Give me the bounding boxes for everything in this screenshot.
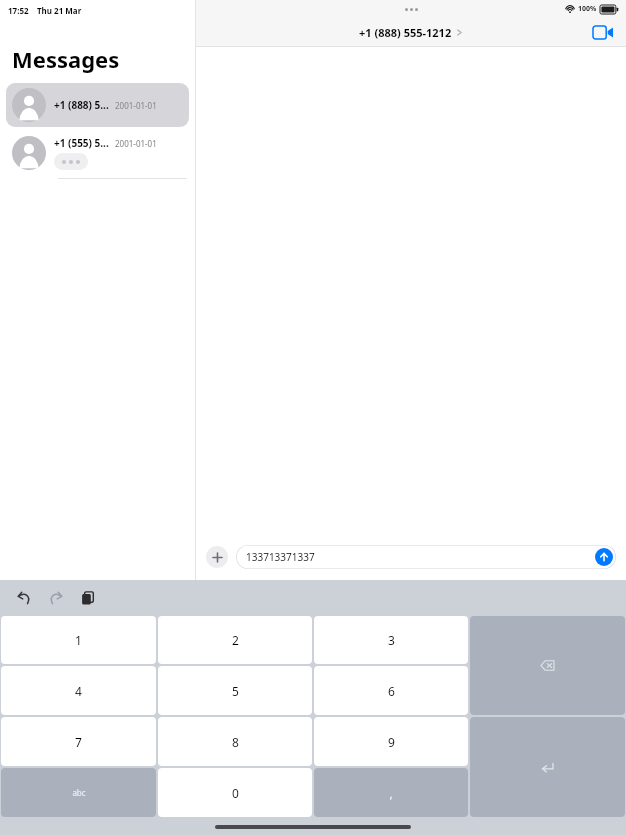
staticText: 7 [75,734,82,750]
staticText: Thu 21 Mar [37,5,82,16]
button[interactable]: 9 [314,717,468,766]
staticText: abc [72,787,86,798]
staticText: +1 (888) 555-1212 [359,25,452,40]
button[interactable]: 5 [158,666,312,715]
button[interactable]: abc [1,768,156,817]
button[interactable]: Add attachment [206,546,228,568]
button[interactable]: +1 (888) 5... [6,83,189,127]
staticText: Messages [12,44,120,74]
button[interactable]: Undo [14,588,34,608]
staticText: 2 [232,632,239,648]
button[interactable]: 6 [314,666,468,715]
button[interactable]: 133713371337 [236,545,616,569]
button[interactable]: Send [595,548,613,566]
staticText: 5 [232,683,239,699]
staticText: 100% [578,4,597,14]
button[interactable]: +1 (555) 5... [6,129,189,177]
button[interactable]: +1 (888) 555-1212 [359,25,463,40]
staticText: 2001-01-01 [115,100,157,111]
button[interactable]: 1 [1,616,156,664]
staticText: 9 [388,734,395,750]
button[interactable]: 8 [158,717,312,766]
button[interactable]: 0 [158,768,312,817]
button[interactable]: 2 [158,616,312,664]
button[interactable]: 3 [314,616,468,664]
staticText: 133713371337 [246,550,315,564]
button[interactable]: Redo [46,588,66,608]
staticText: 2001-01-01 [115,138,157,149]
staticText: 0 [232,785,239,801]
staticText: 1 [75,632,82,648]
button[interactable]: 4 [1,666,156,715]
staticText: 3 [388,632,395,648]
staticText: +1 (555) 5... [54,136,109,150]
staticText: 4 [75,683,82,699]
button[interactable]: 7 [1,717,156,766]
staticText: 6 [388,683,395,699]
staticText: 17:52 [8,5,29,16]
staticText: +1 (888) 5... [54,98,109,112]
staticText: , [389,785,393,801]
staticText: 8 [232,734,239,750]
button[interactable]: Paste [78,588,98,608]
button[interactable]: FaceTime video call [590,19,616,45]
